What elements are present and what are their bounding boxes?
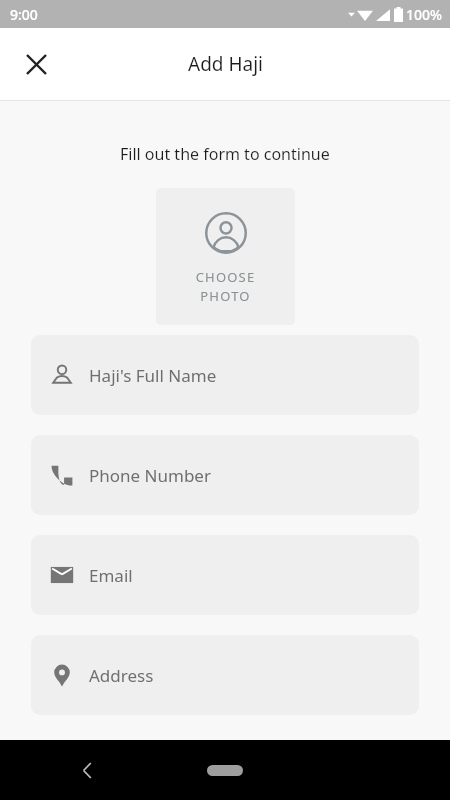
staticText: Address xyxy=(89,664,154,687)
button[interactable]: CHOOSE PHOTO xyxy=(156,188,295,325)
button[interactable]: Home xyxy=(195,755,255,785)
button[interactable]: Haji's Full Name xyxy=(31,335,419,415)
button[interactable]: Close xyxy=(12,40,60,88)
staticText: 100% xyxy=(406,5,442,24)
button[interactable]: Address xyxy=(31,635,419,715)
button[interactable]: Phone Number xyxy=(31,435,419,515)
staticText: CHOOSE PHOTO xyxy=(156,268,295,305)
button[interactable]: Email xyxy=(31,535,419,615)
staticText: 9:00 xyxy=(10,5,38,24)
staticText: Fill out the form to continue xyxy=(120,143,330,165)
staticText: Email xyxy=(89,564,133,587)
staticText: Haji's Full Name xyxy=(89,364,217,387)
staticText: Phone Number xyxy=(89,464,211,487)
button[interactable]: Back xyxy=(66,749,108,791)
staticText: Add Haji xyxy=(188,51,263,77)
